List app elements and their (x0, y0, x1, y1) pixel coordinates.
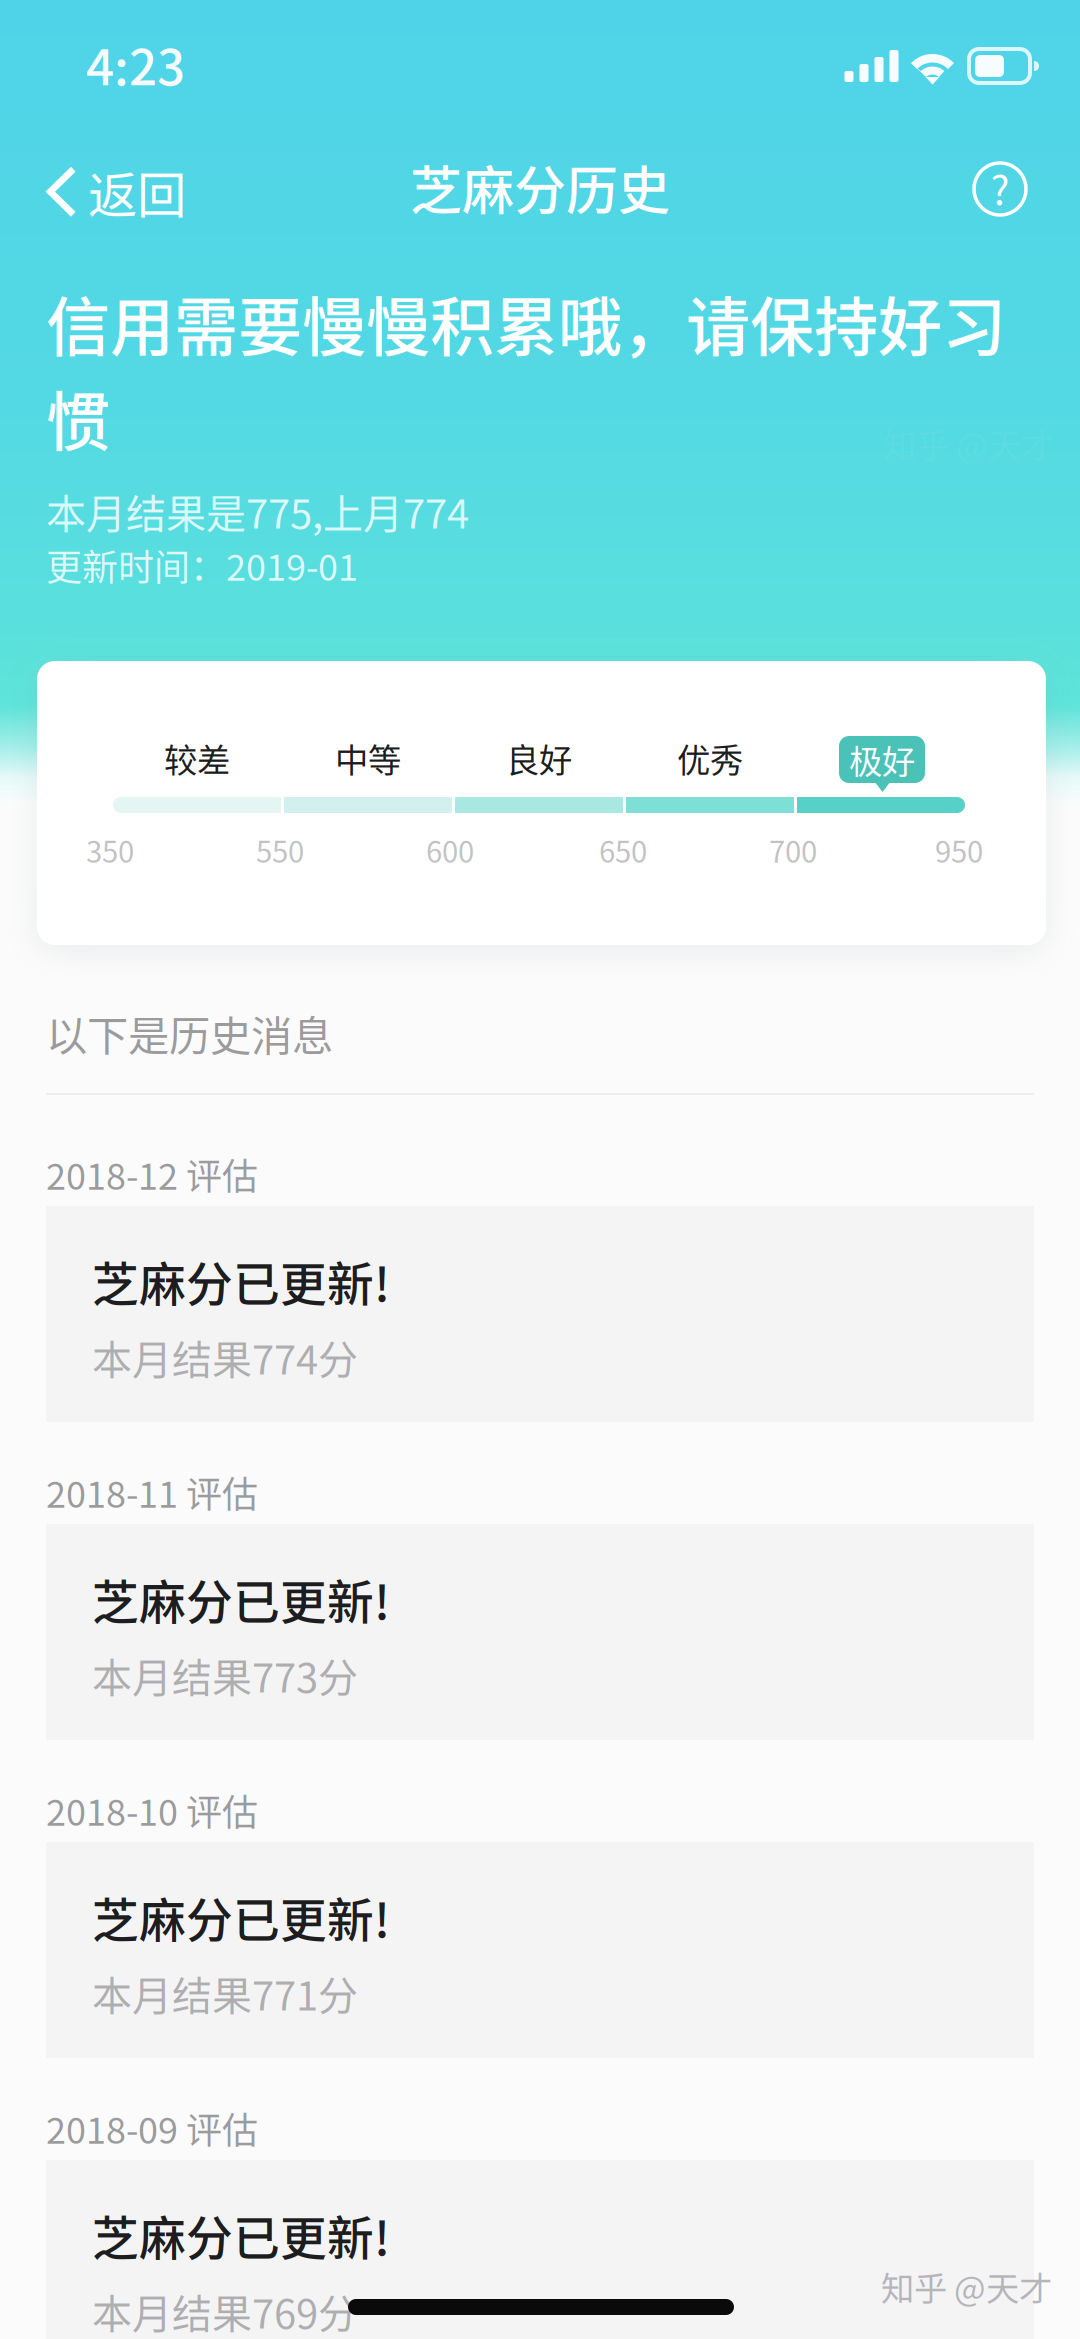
staticText: ? (990, 158, 1009, 216)
staticText: 芝麻分已更新! (92, 1247, 390, 1315)
staticText: 极好 (849, 735, 915, 784)
staticText: 本月结果是775,上月774 (46, 482, 469, 540)
button[interactable]: 芝麻分已更新! (46, 1524, 1034, 1740)
staticText: 中等 (335, 734, 401, 782)
staticText: 700 (769, 829, 817, 871)
staticText: 350 (86, 829, 134, 871)
staticText: 650 (599, 829, 647, 871)
button[interactable]: 芝麻分已更新! (46, 1842, 1034, 2058)
staticText: 2018-09 评估 (46, 2102, 258, 2154)
button[interactable]: 芝麻分已更新! (46, 2160, 1034, 2339)
staticText: 更新时间：2019-01 (46, 539, 358, 591)
staticText: 本月结果774分 (92, 1328, 358, 1386)
staticText: 2018-10 评估 (46, 1784, 258, 1836)
staticText: 550 (256, 829, 304, 871)
staticText: 良好 (506, 734, 572, 782)
staticText: 知乎 @天才 (881, 2262, 1052, 2310)
staticText: 较差 (164, 734, 230, 782)
button[interactable]: 返回 (29, 142, 200, 241)
staticText: 950 (935, 829, 983, 871)
staticText: 芝麻分已更新! (92, 1883, 390, 1951)
staticText: 2018-11 评估 (46, 1466, 258, 1518)
staticText: 芝麻分历史 (410, 149, 670, 225)
staticText: 信用需要慢慢积累哦，请保持好习惯 (46, 276, 1006, 463)
button[interactable]: Help (961, 150, 1039, 228)
staticText: 返回 (88, 156, 186, 227)
staticText: 600 (426, 829, 474, 871)
staticText: 本月结果769分 (92, 2282, 358, 2339)
staticText: 优秀 (677, 734, 743, 782)
button[interactable]: 芝麻分已更新! (46, 1206, 1034, 1422)
staticText: 芝麻分已更新! (92, 1565, 390, 1633)
staticText: 以下是历史消息 (46, 1003, 333, 1063)
staticText: 4:23 (86, 28, 185, 99)
staticText: 芝麻分已更新! (92, 2201, 390, 2269)
staticText: 本月结果771分 (92, 1964, 358, 2022)
staticText: 2018-12 评估 (46, 1148, 258, 1200)
staticText: 本月结果773分 (92, 1646, 358, 1704)
